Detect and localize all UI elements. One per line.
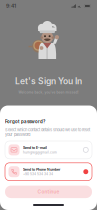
staticText: Welcome back, you've been missed! (18, 90, 78, 94)
button[interactable]: Continue (5, 186, 92, 198)
staticText: Forgot password? (5, 119, 45, 124)
staticText: Select which contact details should we u… (5, 127, 90, 137)
staticText: Send to Phone Number (23, 167, 60, 172)
button[interactable]: Send to E-mail (5, 141, 92, 159)
staticText: Continue (37, 189, 59, 195)
button[interactable]: Send to Phone Number (5, 163, 92, 181)
staticText: +90 534 534 34 34 (23, 172, 53, 176)
staticText: Let's Sign You In (15, 76, 82, 86)
staticText: 9:41 (6, 3, 16, 9)
staticText: humgreg@gmail.com (23, 150, 57, 154)
staticText: Send to E-mail (23, 146, 47, 150)
